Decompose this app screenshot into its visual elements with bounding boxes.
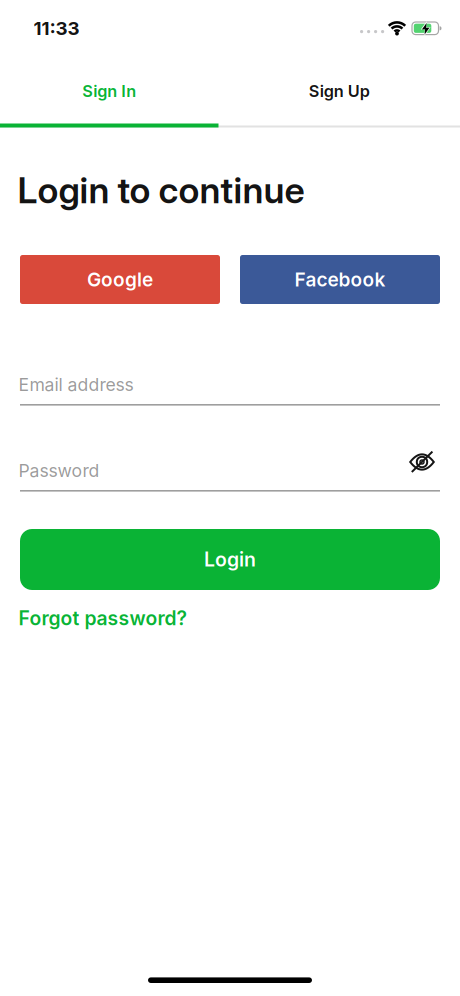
button[interactable]: Forgot password?: [18, 606, 187, 630]
button[interactable]: Google: [20, 255, 220, 304]
staticText: Google: [87, 268, 153, 291]
staticText: Email address: [18, 374, 133, 395]
button[interactable]: Login: [20, 529, 440, 590]
staticText: Password: [18, 460, 99, 481]
staticText: Forgot password?: [18, 606, 187, 630]
staticText: Login to continue: [17, 169, 304, 212]
button[interactable]: Sign Up: [230, 56, 448, 126]
staticText: Facebook: [294, 268, 385, 291]
staticText: 11:33: [33, 17, 79, 40]
staticText: Login: [204, 548, 256, 571]
button[interactable]: Sign In: [0, 56, 218, 126]
staticText: Sign In: [82, 81, 136, 101]
button[interactable]: Show password: [406, 448, 438, 476]
staticText: Sign Up: [309, 81, 370, 101]
button[interactable]: Facebook: [240, 255, 440, 304]
